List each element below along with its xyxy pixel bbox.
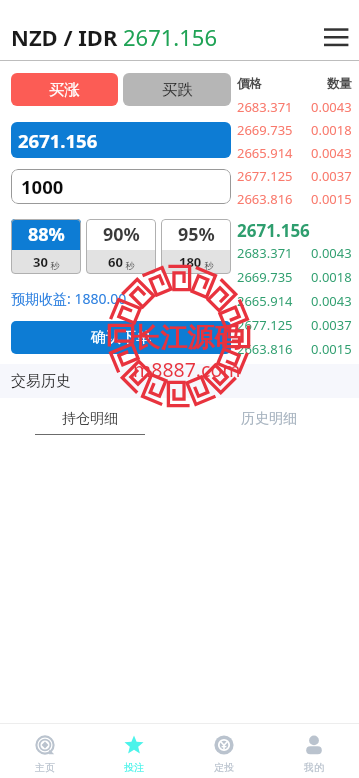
- staticText: 预期收益: 1880.00: [11, 289, 127, 308]
- staticText: 投注: [124, 761, 144, 774]
- staticText: 180: [179, 253, 202, 271]
- button[interactable]: 投注: [89, 724, 179, 778]
- staticText: 2671.156: [18, 128, 98, 153]
- button[interactable]: 2671.156: [11, 122, 231, 158]
- button[interactable]: Menu: [324, 25, 353, 54]
- staticText: 95%: [178, 222, 215, 247]
- staticText: 1000: [21, 174, 64, 199]
- staticText: 0.0043: [311, 244, 352, 262]
- staticText: m8887.com: [133, 356, 241, 383]
- button[interactable]: 定投: [179, 724, 269, 778]
- staticText: 买跌: [162, 80, 193, 100]
- button[interactable]: 确认下单: [11, 321, 231, 354]
- staticText: 定投: [214, 761, 234, 774]
- staticText: 90%: [103, 222, 140, 247]
- button[interactable]: 88%: [11, 219, 81, 274]
- staticText: 秒: [202, 259, 214, 271]
- button[interactable]: 我的: [269, 724, 359, 778]
- staticText: 0.0043: [311, 144, 352, 162]
- staticText: 持仓明细: [62, 410, 118, 428]
- button[interactable]: 1000: [11, 169, 231, 204]
- staticText: 2665.914: [237, 292, 293, 310]
- staticText: 0.0043: [311, 292, 352, 310]
- button[interactable]: 买跌: [123, 73, 231, 106]
- staticText: 主页: [35, 761, 55, 774]
- staticText: 0.0018: [311, 121, 352, 139]
- staticText: NZD / IDR: [11, 22, 118, 52]
- staticText: 长江源码: [133, 321, 241, 355]
- staticText: 0.0015: [311, 190, 352, 208]
- staticText: 2665.914: [237, 144, 293, 162]
- staticText: 秒: [123, 259, 135, 271]
- button[interactable]: 买涨: [11, 73, 118, 106]
- staticText: 0.0037: [311, 167, 352, 185]
- staticText: 历史明细: [241, 410, 297, 428]
- staticText: 2669.735: [237, 121, 293, 139]
- staticText: 交易历史: [11, 372, 71, 391]
- staticText: 0.0018: [311, 268, 352, 286]
- staticText: 2669.735: [237, 268, 293, 286]
- staticText: 秒: [48, 259, 60, 271]
- button[interactable]: 持仓明细: [0, 398, 179, 443]
- staticText: 买涨: [49, 80, 80, 100]
- staticText: 数量: [327, 76, 352, 92]
- staticText: 2677.125: [237, 167, 293, 185]
- staticText: 2671.156: [237, 219, 310, 237]
- button[interactable]: 历史明细: [179, 398, 359, 443]
- button[interactable]: 主页: [0, 724, 89, 778]
- button[interactable]: 90%: [86, 219, 156, 274]
- staticText: 60: [108, 253, 123, 271]
- staticText: 0.0015: [311, 340, 352, 358]
- staticText: 價格: [237, 76, 262, 92]
- staticText: 2677.125: [237, 316, 293, 334]
- button[interactable]: 95%: [161, 219, 231, 274]
- staticText: 2663.816: [237, 340, 293, 358]
- staticText: 30: [33, 253, 48, 271]
- staticText: 我的: [304, 761, 324, 774]
- staticText: 2671.156: [123, 22, 217, 52]
- staticText: 2683.371: [237, 244, 293, 262]
- staticText: 0.0037: [311, 316, 352, 334]
- staticText: 88%: [28, 222, 65, 247]
- staticText: 2663.816: [237, 190, 293, 208]
- staticText: 确认下单: [91, 328, 151, 347]
- staticText: 0.0043: [311, 98, 352, 116]
- staticText: 2683.371: [237, 98, 293, 116]
